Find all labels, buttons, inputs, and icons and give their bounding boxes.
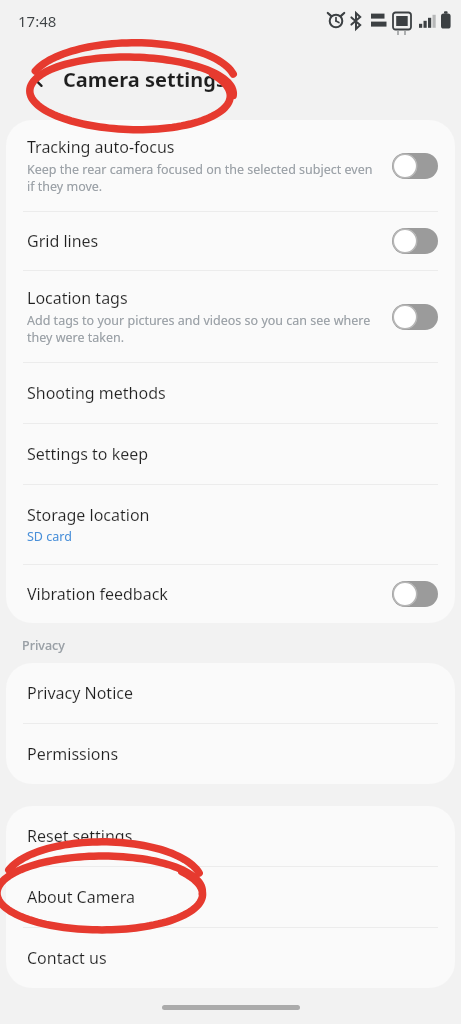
staticText: Camera settings xyxy=(63,66,226,93)
button[interactable]: Shooting methods xyxy=(6,363,455,423)
button[interactable]: Vibration feedback xyxy=(6,565,455,623)
button[interactable]: Permissions xyxy=(6,724,455,784)
button[interactable]: Privacy Notice xyxy=(6,663,455,723)
staticText: Privacy xyxy=(22,637,65,654)
staticText: Grid lines xyxy=(27,230,99,252)
staticText: Location tags xyxy=(27,287,128,309)
button[interactable]: Navigate up xyxy=(22,62,56,96)
staticText: Storage location xyxy=(27,504,150,526)
button[interactable]: Contact us xyxy=(6,928,455,988)
button[interactable]: Grid lines xyxy=(6,212,455,270)
staticText: Permissions xyxy=(27,743,119,765)
button[interactable]: Storage location xyxy=(6,485,455,564)
staticText: Keep the rear camera focused on the sele… xyxy=(27,161,378,195)
staticText: About Camera xyxy=(27,886,135,908)
staticText: Shooting methods xyxy=(27,382,166,404)
button[interactable]: About Camera xyxy=(6,867,455,927)
button[interactable]: Location tags xyxy=(6,271,455,362)
staticText: Privacy Notice xyxy=(27,682,133,704)
staticText: Settings to keep xyxy=(27,443,149,465)
button[interactable]: Settings to keep xyxy=(6,424,455,484)
staticText: Vibration feedback xyxy=(27,583,168,605)
staticText: Tracking auto-focus xyxy=(27,136,175,158)
staticText: SD card xyxy=(27,528,72,545)
staticText: Reset settings xyxy=(27,825,133,847)
staticText: 17:48 xyxy=(18,11,57,31)
staticText: Contact us xyxy=(27,947,107,969)
button[interactable]: Reset settings xyxy=(6,806,455,866)
staticText: Add tags to your pictures and videos so … xyxy=(27,312,378,346)
button[interactable]: Tracking auto-focus xyxy=(6,120,455,211)
